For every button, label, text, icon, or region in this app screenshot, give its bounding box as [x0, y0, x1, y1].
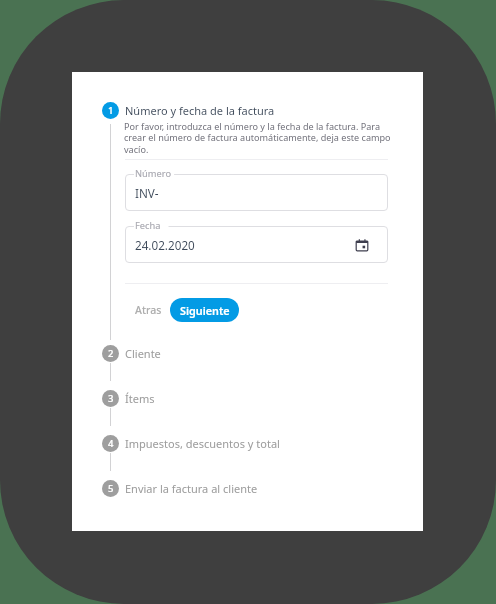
- staticText: Número y fecha de la factura: [125, 103, 275, 118]
- button[interactable]: 1: [96, 96, 285, 125]
- staticText: Siguiente: [180, 303, 230, 318]
- staticText: Atras: [135, 303, 162, 317]
- staticText: INV-: [135, 185, 159, 201]
- staticText: 3: [108, 392, 114, 405]
- button[interactable]: Atras: [127, 298, 170, 322]
- staticText: Impuestos, descuentos y total: [125, 436, 280, 451]
- staticText: Número: [135, 167, 172, 180]
- staticText: Ítems: [125, 391, 155, 406]
- staticText: 4: [108, 437, 114, 450]
- button[interactable]: Elegir fecha: [351, 234, 373, 256]
- button[interactable]: Siguiente: [170, 298, 239, 322]
- staticText: Por favor, introduzca el número y la fec…: [124, 120, 402, 156]
- staticText: 2: [108, 347, 114, 360]
- staticText: 5: [108, 482, 114, 495]
- staticText: Cliente: [125, 346, 161, 361]
- staticText: Fecha: [135, 219, 161, 232]
- button[interactable]: 4: [96, 429, 290, 458]
- button[interactable]: 5: [96, 474, 268, 503]
- staticText: 24.02.2020: [135, 237, 195, 253]
- staticText: Enviar la factura al cliente: [125, 481, 258, 496]
- button[interactable]: 2: [96, 339, 171, 368]
- staticText: 1: [108, 104, 114, 117]
- button[interactable]: 3: [96, 384, 165, 413]
